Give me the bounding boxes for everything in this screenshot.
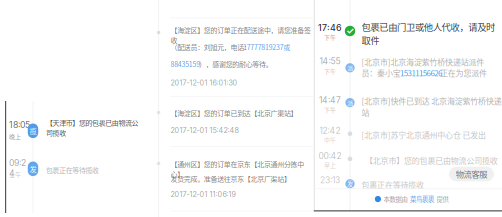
button[interactable]: 物流客服 [449, 167, 494, 181]
staticText: 【北京市】您的包裹已由物流公司揽收 [365, 154, 498, 166]
staticText: 12:42 [319, 125, 340, 136]
staticText: ✓ [346, 25, 354, 37]
staticText: 物流客服 [456, 168, 487, 180]
staticText: 00:42 [318, 151, 341, 161]
staticText: 14:47 [319, 95, 341, 105]
staticText: 正在为您派件 [440, 67, 487, 79]
staticText: [北京市]快件已到达 北京海淀紫竹桥快递站 [361, 95, 502, 118]
staticText: 14:55 [319, 56, 340, 66]
staticText: 17777819237或 [243, 42, 290, 52]
staticText: 2017-12-01 11:06:19 [170, 190, 235, 199]
staticText: 发 [347, 179, 353, 188]
staticText: 09:24 [9, 157, 26, 178]
staticText: 88435159 [170, 59, 200, 69]
staticText: 下午 [324, 105, 336, 114]
staticText: 员：秦小宝 [361, 67, 401, 79]
staticText: 中午 [324, 135, 336, 144]
staticText: 15311156626 [400, 67, 442, 79]
staticText: 18:05 [9, 119, 30, 130]
staticText: 发 [29, 164, 36, 174]
staticText: ），感谢您的耐心等待。 [199, 59, 273, 69]
staticText: 【海淀区】您的订单正在配送途中，请您准备签收 [170, 25, 311, 45]
staticText: 派 [347, 63, 353, 72]
staticText: 下午 [324, 67, 336, 75]
staticText: 早上 [324, 161, 336, 169]
staticText: 2017-12-01 15:42:48 [170, 126, 238, 135]
staticText: 晚上 [9, 132, 21, 141]
staticText: 提供 [436, 194, 448, 204]
staticText: 23:13 [320, 175, 340, 185]
staticText: 【通州区】您的订单在京东【北京通州分拣中心】 [170, 159, 304, 179]
staticText: 【天津市】您的包裹已由物流公司揽收 [46, 117, 138, 138]
staticText: （配送员：刘旭元，电话： [170, 42, 251, 52]
staticText: 17:46 [318, 22, 342, 33]
staticText: 发货完成，准备送往京东【北京广渠站】 [170, 173, 291, 183]
staticText: 2017-12-01 16:01:30 [170, 78, 237, 87]
staticText: 揽 [29, 126, 36, 136]
staticText: 本数据由 [383, 194, 407, 204]
staticText: 下午 [324, 33, 336, 41]
staticText: 菜鸟裹裹 [410, 194, 434, 204]
staticText: [北京市]苏宁北京通州中心仓 已发出 [361, 129, 486, 141]
staticText: [北京市]北京海淀紫竹桥快递站派件 [361, 56, 484, 68]
staticText: 上午 [9, 170, 21, 179]
staticText: 包裹正在等待揽收 [46, 165, 99, 175]
staticText: 包裹已由门卫或他人代收，请及时取件 [361, 20, 495, 47]
staticText: 包裹正在等待揽收 [361, 179, 424, 191]
staticText: 【海淀区】您的订单已到达【北京广渠站】 [170, 108, 298, 118]
staticText: 派 [347, 98, 353, 107]
